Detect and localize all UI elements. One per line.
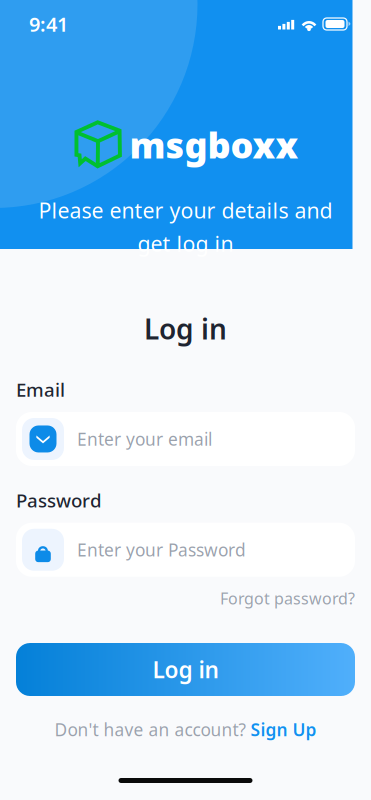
staticText: Forgot password? — [220, 588, 355, 609]
staticText: Log in — [152, 654, 218, 685]
staticText: Don't have an account? — [54, 718, 246, 741]
staticText: Enter your Password — [77, 538, 246, 561]
button[interactable]: Forgot password? — [220, 588, 355, 609]
staticText: get log in — [137, 229, 233, 258]
staticText: Sign Up — [250, 718, 316, 741]
button[interactable]: Don't have an account? — [54, 718, 316, 741]
staticText: Email — [16, 377, 65, 402]
staticText: msgboxx — [129, 121, 298, 168]
button[interactable]: Log in — [16, 643, 355, 696]
staticText: 9:41 — [29, 11, 68, 37]
staticText: Please enter your details and — [38, 196, 332, 224]
staticText: Log in — [144, 310, 227, 347]
button[interactable]: Enter your Password — [16, 523, 355, 577]
staticText: Enter your email — [77, 427, 212, 450]
button[interactable]: Enter your email — [16, 412, 355, 466]
staticText: Password — [16, 488, 102, 513]
